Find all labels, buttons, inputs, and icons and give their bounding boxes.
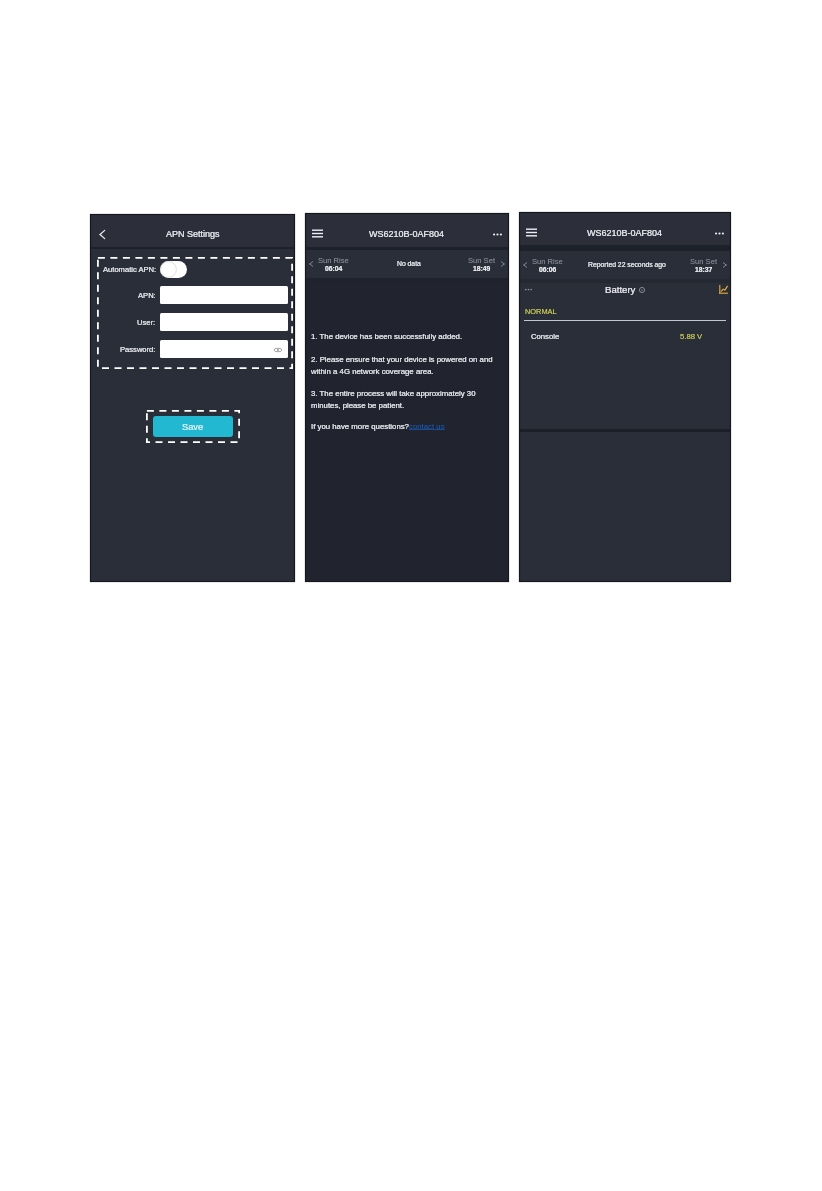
- staticText: minutes, please be patient.: [311, 401, 405, 410]
- staticText: Save: [182, 422, 204, 432]
- staticText: Sun Set: [690, 257, 718, 265]
- button[interactable]: Menu: [523, 224, 539, 240]
- button[interactable]: More options: [489, 226, 505, 242]
- staticText: Console: [531, 332, 560, 341]
- staticText: 2. Please ensure that your device is pow…: [311, 355, 493, 364]
- button[interactable]: Menu: [309, 225, 325, 241]
- button[interactable]: Back: [93, 225, 111, 243]
- staticText: If you have more questions?: [311, 422, 409, 431]
- button[interactable]: Show password: [160, 340, 288, 358]
- staticText: APN:: [138, 291, 156, 299]
- button[interactable]: Save: [153, 416, 233, 437]
- staticText: Sun Set: [468, 256, 496, 264]
- staticText: APN Settings: [166, 229, 220, 239]
- button[interactable]: [160, 313, 288, 331]
- staticText: Password:: [120, 345, 156, 353]
- staticText: within a 4G network coverage area.: [311, 367, 434, 376]
- staticText: 06:06: [539, 266, 557, 274]
- button[interactable]: [160, 286, 288, 304]
- staticText: Reported 22 seconds ago: [588, 261, 666, 269]
- staticText: Automatic APN:: [103, 265, 157, 273]
- staticText: WS6210B-0AF804: [587, 228, 663, 238]
- staticText: Sun Rise: [532, 257, 563, 265]
- button[interactable]: Automatic APN toggle: [160, 261, 187, 278]
- staticText: 3. The entire process will take approxim…: [311, 389, 476, 398]
- button[interactable]: More options: [711, 225, 727, 241]
- staticText: WS6210B-0AF804: [369, 229, 445, 239]
- staticText: 1. The device has been successfully adde…: [311, 332, 463, 341]
- staticText: User:: [137, 318, 156, 326]
- staticText: No data: [397, 260, 421, 268]
- staticText: 18:37: [695, 266, 713, 274]
- staticText: 5.88 V: [680, 332, 703, 341]
- button[interactable]: Console: [519, 330, 731, 342]
- staticText: NORMAL: [525, 307, 557, 315]
- staticText: 18:49: [473, 265, 491, 273]
- button[interactable]: More: [522, 283, 534, 295]
- button[interactable]: Chart: [718, 284, 728, 294]
- button[interactable]: Show password: [273, 345, 282, 354]
- staticText: Sun Rise: [318, 256, 349, 264]
- staticText: Battery: [605, 284, 636, 295]
- button[interactable]: contact us: [409, 422, 445, 431]
- staticText: 06:04: [325, 265, 343, 273]
